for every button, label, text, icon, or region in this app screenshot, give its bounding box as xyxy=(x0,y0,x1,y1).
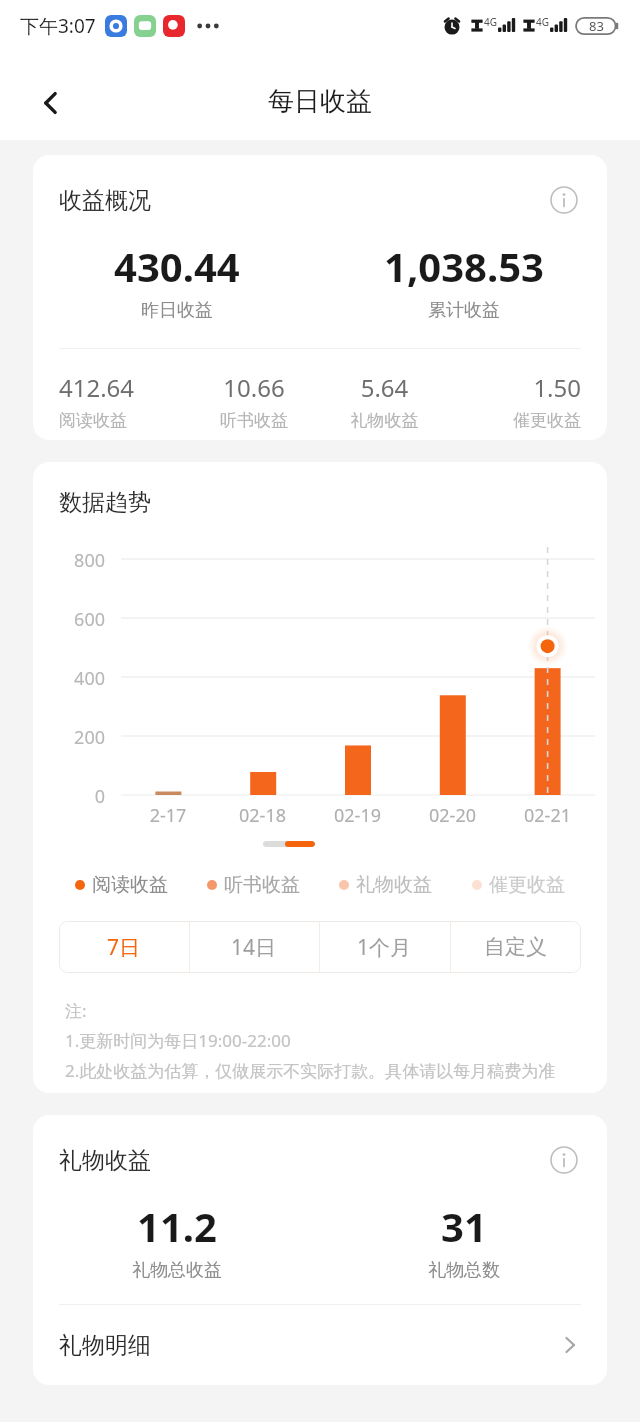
staticText: 11.2 xyxy=(137,1199,217,1253)
button[interactable]: 1个月 xyxy=(319,921,450,973)
staticText: 400 xyxy=(33,666,105,691)
staticText: 5.64 xyxy=(319,371,450,404)
staticText: 83 xyxy=(589,17,604,35)
button[interactable]: Back xyxy=(24,76,78,130)
staticText: 催更收益 xyxy=(489,873,565,897)
staticText: 1.更新时间为每日19:00-22:00 xyxy=(65,1029,291,1052)
button[interactable]: 礼物收益 xyxy=(319,873,452,897)
staticText: 1.50 xyxy=(450,371,581,404)
staticText: 600 xyxy=(33,607,105,632)
staticText: 4G xyxy=(536,15,549,29)
staticText: 礼物明细 xyxy=(59,1331,151,1360)
button[interactable]: Info xyxy=(547,183,581,217)
staticText: 1,038.53 xyxy=(384,239,544,293)
staticText: 10.66 xyxy=(189,371,319,404)
staticText: 31 xyxy=(441,1199,487,1253)
button[interactable]: 14日 xyxy=(189,921,319,973)
button[interactable]: 听书收益 xyxy=(187,873,319,897)
staticText: 412.64 xyxy=(59,371,189,404)
staticText: 昨日收益 xyxy=(141,299,213,322)
staticText: 数据趋势 xyxy=(59,488,151,517)
staticText: 礼物收益 xyxy=(319,410,450,431)
staticText: 4G xyxy=(484,15,497,29)
staticText: 14日 xyxy=(231,933,277,962)
staticText: 自定义 xyxy=(484,934,547,960)
staticText: 800 xyxy=(33,548,105,573)
staticText: 0 xyxy=(33,784,105,809)
staticText: 礼物总收益 xyxy=(132,1259,222,1282)
staticText: 听书收益 xyxy=(189,410,319,431)
staticText: 02-19 xyxy=(310,803,405,828)
button[interactable]: 礼物明细 xyxy=(33,1305,607,1385)
staticText: 430.44 xyxy=(114,239,240,293)
staticText: 每日收益 xyxy=(268,85,372,118)
staticText: 礼物总数 xyxy=(428,1259,500,1282)
staticText: 2-17 xyxy=(121,803,215,828)
button[interactable]: 阅读收益 xyxy=(55,873,187,897)
staticText: 下午3:07 xyxy=(20,13,96,39)
staticText: 礼物收益 xyxy=(356,873,432,897)
staticText: 收益概况 xyxy=(59,186,151,215)
staticText: 礼物收益 xyxy=(59,1146,151,1175)
staticText: 阅读收益 xyxy=(92,873,168,897)
button[interactable]: Info xyxy=(547,1143,581,1177)
staticText: 2.此处收益为估算，仅做展示不实际打款。具体请以每月稿费为准 xyxy=(65,1059,556,1082)
staticText: 阅读收益 xyxy=(59,410,189,431)
staticText: 注: xyxy=(65,999,87,1022)
staticText: 02-21 xyxy=(500,803,595,828)
button[interactable]: 7日 xyxy=(59,921,189,973)
staticText: 02-20 xyxy=(405,803,500,828)
staticText: 7日 xyxy=(107,933,141,962)
button[interactable]: 催更收益 xyxy=(452,873,585,897)
staticText: 听书收益 xyxy=(224,873,300,897)
staticText: 200 xyxy=(33,725,105,750)
staticText: 02-18 xyxy=(215,803,310,828)
staticText: 累计收益 xyxy=(428,299,500,322)
staticText: 1个月 xyxy=(357,933,412,962)
staticText: 催更收益 xyxy=(450,410,581,431)
button[interactable]: 自定义 xyxy=(450,921,581,973)
